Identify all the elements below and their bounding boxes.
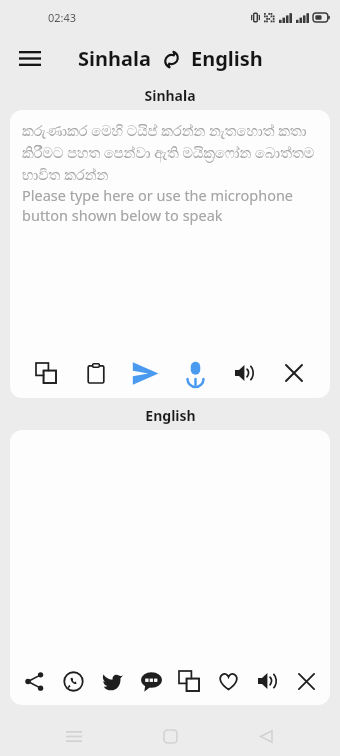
- button[interactable]: Clear: [275, 354, 313, 392]
- staticText: Sinhala: [144, 86, 196, 105]
- button[interactable]: SMS: [132, 662, 170, 700]
- button[interactable]: Swap languages: [159, 47, 183, 71]
- button[interactable]: Twitter: [93, 662, 131, 700]
- staticText: English: [145, 406, 196, 425]
- button[interactable]: Recents: [52, 716, 96, 756]
- button[interactable]: English: [191, 45, 263, 72]
- button[interactable]: Menu: [10, 38, 50, 78]
- button[interactable]: WhatsApp: [54, 662, 92, 700]
- button[interactable]: Home: [148, 716, 192, 756]
- button[interactable]: Favourite: [209, 662, 247, 700]
- button[interactable]: Speak: [248, 662, 286, 700]
- button[interactable]: Share: [15, 662, 53, 700]
- button[interactable]: Clear: [287, 662, 325, 700]
- button[interactable]: Copy: [27, 354, 65, 392]
- staticText: 02:43: [48, 10, 77, 25]
- staticText: Please type here or use the microphone b…: [22, 185, 320, 225]
- button[interactable]: Paste: [77, 354, 115, 392]
- button[interactable]: Sinhala: [78, 45, 151, 72]
- button[interactable]: Back: [244, 716, 288, 756]
- button[interactable]: Copy: [170, 662, 208, 700]
- button[interactable]: Microphone: [176, 354, 214, 392]
- button[interactable]: කරුණාකර මෙහි ටයිප් කරන්න නැතහොත් කතා කිර…: [22, 120, 320, 348]
- staticText: කරුණාකර මෙහි ටයිප් කරන්න නැතහොත් කතා කිර…: [22, 120, 320, 185]
- button[interactable]: Speak: [225, 354, 263, 392]
- button[interactable]: Send: [126, 354, 164, 392]
